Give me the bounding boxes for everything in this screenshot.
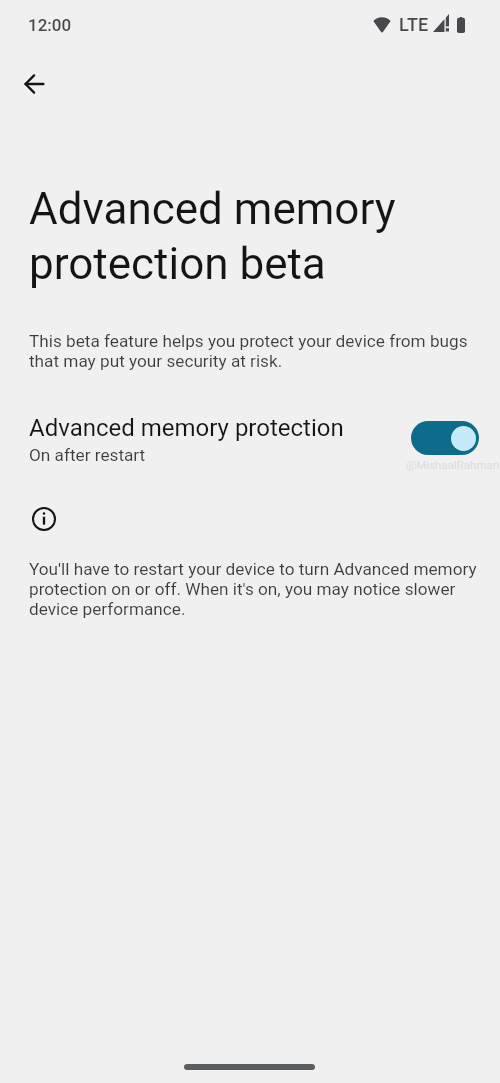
staticText: LTE <box>399 14 429 35</box>
button[interactable]: Back <box>12 62 56 106</box>
staticText: Advanced memory protection <box>29 414 344 442</box>
other: Information <box>32 507 56 531</box>
staticText: This beta feature helps you protect your… <box>29 331 481 371</box>
staticText: @MishaalRahman <box>406 458 500 471</box>
button[interactable]: Toggle advanced memory protection <box>411 421 479 455</box>
staticText: You'll have to restart your device to tu… <box>29 559 484 619</box>
staticText: On after restart <box>29 445 146 465</box>
staticText: 12:00 <box>28 15 72 35</box>
button[interactable]: Advanced memory protection <box>0 408 500 470</box>
staticText: Advanced memory protection beta <box>29 183 396 289</box>
